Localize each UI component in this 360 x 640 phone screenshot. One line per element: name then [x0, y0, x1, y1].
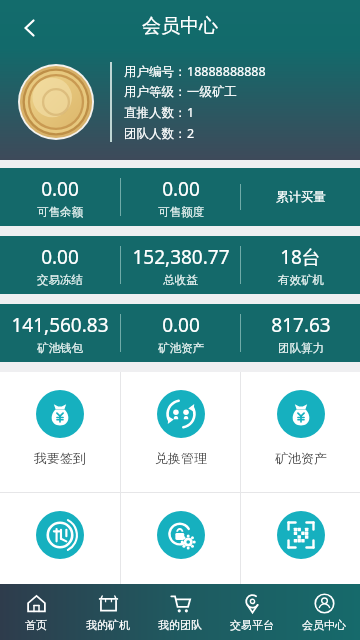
staticText: 一级矿工 — [187, 84, 237, 100]
staticText: 矿池资产 — [158, 341, 204, 355]
staticText: 交易平台 — [230, 618, 274, 632]
staticText: 首页 — [25, 618, 47, 632]
staticText: 1 — [187, 104, 195, 121]
staticText: 总收益 — [163, 273, 198, 287]
staticText: 18台 — [280, 244, 321, 270]
staticText: 矿池资产 — [275, 450, 327, 466]
staticText: 可售额度 — [158, 205, 204, 219]
staticText: 团队算力 — [278, 341, 324, 355]
button[interactable]: 矿池资产 — [241, 372, 360, 492]
button[interactable]: 141,560.83 — [0, 304, 120, 362]
button[interactable]: Menu item — [0, 493, 120, 584]
button[interactable]: 0.00 — [121, 168, 240, 226]
staticText: 累计买量 — [276, 189, 326, 205]
staticText: 会员中心 — [142, 14, 218, 38]
button[interactable]: 交易平台 — [216, 584, 288, 640]
button[interactable]: 我的团队 — [144, 584, 216, 640]
button[interactable]: 首页 — [0, 584, 72, 640]
staticText: 会员中心 — [302, 618, 346, 632]
staticText: 817.63 — [271, 312, 331, 338]
button[interactable]: 0.00 — [0, 168, 120, 226]
staticText: 直推人数： — [124, 105, 187, 121]
staticText: 团队人数： — [124, 126, 187, 142]
staticText: 152,380.77 — [132, 244, 230, 270]
staticText: 用户等级： — [124, 84, 187, 100]
button[interactable]: 会员中心 — [288, 584, 360, 640]
button[interactable]: 0.00 — [0, 236, 120, 294]
button[interactable]: 我要签到 — [0, 372, 120, 492]
button[interactable]: Back — [8, 6, 52, 50]
button[interactable]: 累计买量 — [241, 168, 360, 226]
staticText: 我要签到 — [34, 450, 86, 466]
staticText: 可售余额 — [37, 205, 83, 219]
staticText: 0.00 — [41, 176, 79, 202]
staticText: 兑换管理 — [155, 450, 207, 466]
button[interactable]: 兑换管理 — [121, 372, 240, 492]
staticText: 0.00 — [41, 244, 79, 270]
staticText: 交易冻结 — [37, 273, 83, 287]
staticText: 我的团队 — [158, 618, 202, 632]
button[interactable]: 152,380.77 — [121, 236, 240, 294]
staticText: 矿池钱包 — [37, 341, 83, 355]
button[interactable]: Menu item — [121, 493, 240, 584]
button[interactable]: 18台 — [241, 236, 360, 294]
staticText: 2 — [187, 125, 195, 142]
staticText: 0.00 — [162, 312, 200, 338]
staticText: 18888888888 — [187, 63, 266, 80]
staticText: 我的矿机 — [86, 618, 130, 632]
staticText: 0.00 — [162, 176, 200, 202]
button[interactable]: Menu item — [241, 493, 360, 584]
button[interactable]: 我的矿机 — [72, 584, 144, 640]
staticText: 用户编号： — [124, 64, 187, 80]
staticText: 141,560.83 — [11, 312, 109, 338]
button[interactable]: 0.00 — [121, 304, 240, 362]
staticText: 有效矿机 — [278, 273, 324, 287]
button[interactable]: 817.63 — [241, 304, 360, 362]
